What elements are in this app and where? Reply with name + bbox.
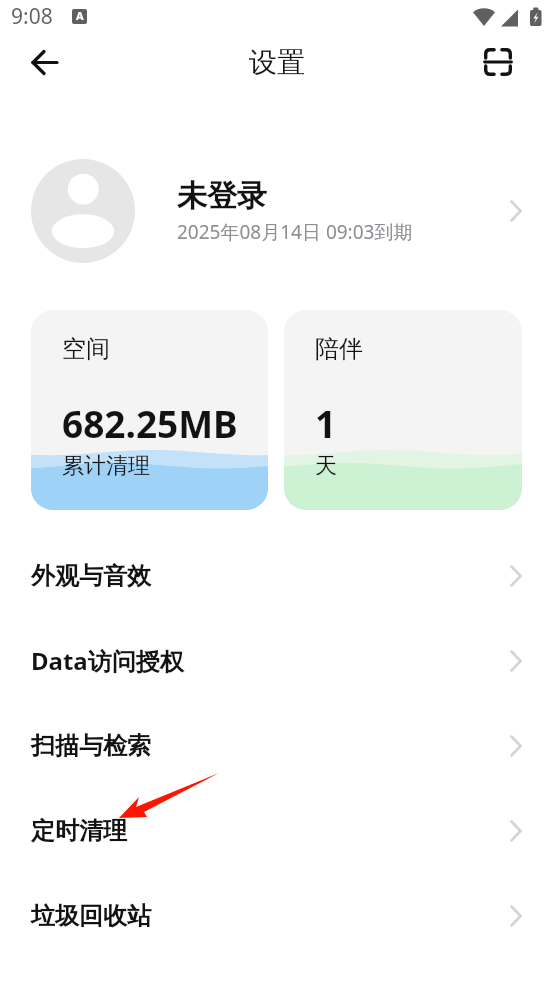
staticText: 1: [315, 398, 337, 448]
staticText: Data访问授权: [31, 644, 184, 677]
button[interactable]: Data访问授权: [0, 618, 553, 703]
button[interactable]: 扫描与检索: [0, 703, 553, 788]
staticText: 未登录: [177, 177, 267, 215]
button[interactable]: Scan: [476, 40, 520, 84]
button[interactable]: 空间: [31, 310, 268, 510]
staticText: 累计清理: [62, 452, 150, 480]
button[interactable]: Back: [18, 36, 70, 88]
staticText: 垃圾回收站: [31, 901, 151, 931]
button[interactable]: 外观与音效: [0, 533, 553, 618]
staticText: 9:08: [11, 2, 53, 31]
staticText: 682.25MB: [62, 398, 238, 448]
button[interactable]: 未登录: [0, 156, 553, 266]
staticText: 扫描与检索: [31, 731, 151, 761]
staticText: 外观与音效: [31, 561, 151, 591]
staticText: 定时清理: [31, 816, 127, 846]
staticText: 天: [315, 452, 337, 480]
staticText: 设置: [249, 45, 305, 80]
button[interactable]: 定时清理: [0, 788, 553, 873]
staticText: A: [76, 9, 84, 23]
staticText: 2025年08月14日 09:03到期: [177, 219, 413, 245]
button[interactable]: 陪伴: [284, 310, 522, 510]
button[interactable]: 垃圾回收站: [0, 873, 553, 958]
staticText: 空间: [62, 334, 110, 364]
staticText: 陪伴: [315, 334, 363, 364]
